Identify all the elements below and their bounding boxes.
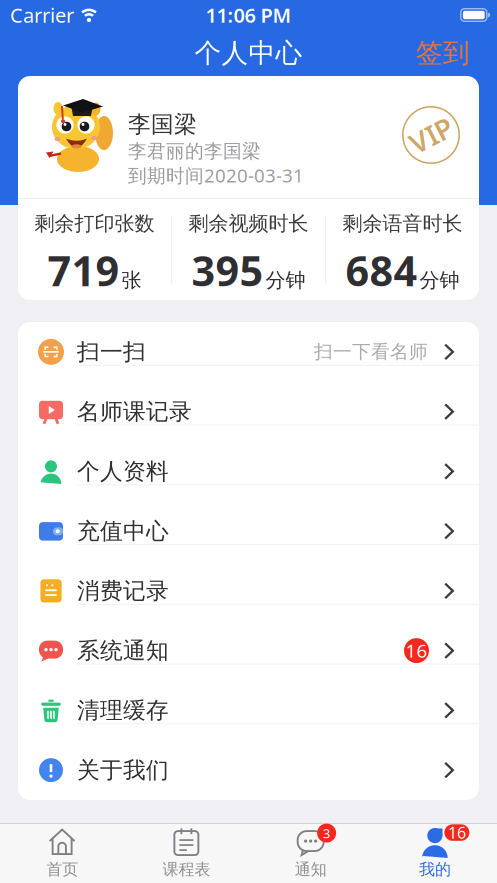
staticText: 684 [345, 243, 417, 298]
button[interactable]: 消费记录 [18, 561, 479, 621]
staticText: 个人中心 [194, 37, 302, 69]
button[interactable]: 3 [248, 828, 373, 879]
staticText: 分钟 [265, 268, 305, 293]
staticText: 关于我们 [77, 756, 169, 784]
button[interactable]: 充值中心 [18, 501, 479, 561]
button[interactable]: 名师课记录 [18, 382, 479, 442]
staticText: 个人资料 [77, 457, 169, 485]
staticText: 系统通知 [77, 637, 169, 664]
staticText: 清理缓存 [77, 696, 169, 724]
staticText: 扫一下看名师 [314, 340, 428, 363]
button[interactable]: 关于我们 [18, 740, 479, 800]
staticText: 课程表 [162, 860, 210, 879]
staticText: 张 [121, 268, 141, 293]
staticText: 11:06 PM [205, 2, 291, 28]
staticText: 剩余打印张数 [34, 211, 154, 236]
staticText: 李国梁 [128, 110, 197, 138]
staticText: Carrier [10, 2, 74, 28]
staticText: 消费记录 [77, 577, 169, 605]
button[interactable]: 签到 [416, 37, 470, 69]
staticText: 我的 [419, 860, 451, 879]
staticText: 395 [191, 243, 263, 298]
button[interactable]: 16 [373, 828, 497, 879]
staticText: 签到 [416, 37, 470, 69]
staticText: 3 [323, 824, 331, 842]
staticText: 剩余语音时长 [342, 211, 462, 236]
staticText: 名师课记录 [77, 398, 192, 425]
staticText: 分钟 [419, 268, 459, 293]
button[interactable]: 个人资料 [18, 441, 479, 501]
button[interactable]: 课程表 [124, 828, 248, 879]
staticText: VIP [408, 116, 453, 154]
staticText: 充值中心 [77, 517, 169, 545]
staticText: 16 [448, 822, 466, 843]
staticText: 首页 [46, 860, 78, 879]
staticText: 719 [47, 243, 119, 298]
button[interactable]: 扫一扫 [18, 322, 479, 382]
button[interactable]: 清理缓存 [18, 680, 479, 740]
button[interactable]: 首页 [0, 828, 124, 879]
staticText: 扫一扫 [77, 338, 146, 366]
staticText: 到期时间2020-03-31 [128, 163, 304, 188]
staticText: 剩余视频时长 [188, 211, 308, 236]
staticText: 李君丽的李国梁 [128, 140, 261, 163]
staticText: 16 [405, 638, 427, 663]
staticText: 通知 [295, 860, 327, 879]
button[interactable]: 系统通知 [18, 621, 479, 681]
